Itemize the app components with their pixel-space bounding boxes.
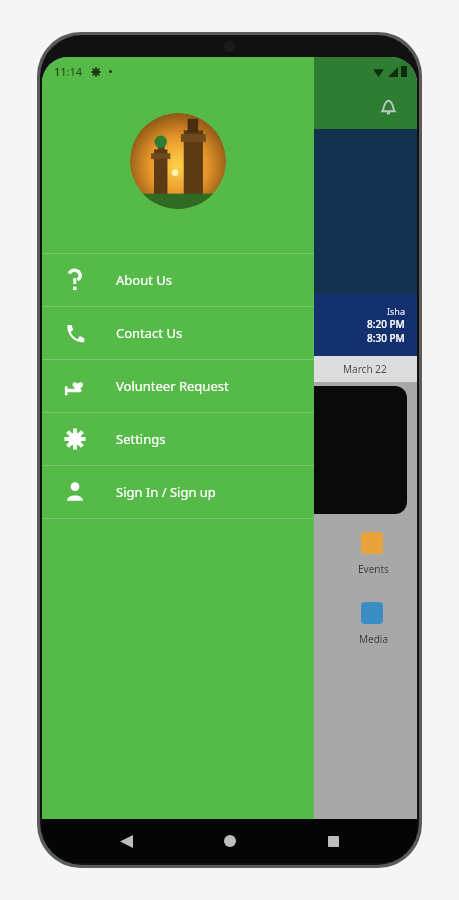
staticText: About Us (116, 271, 173, 289)
button[interactable]: Contact Us (42, 307, 314, 359)
button[interactable]: Volunteer Request (42, 360, 314, 412)
staticText: Contact Us (116, 324, 183, 342)
staticText: Isha (387, 305, 405, 317)
staticText: Volunteer Request (116, 377, 229, 395)
staticText: Sign In / Sign up (116, 483, 216, 501)
staticText: Events (358, 562, 389, 576)
button[interactable]: Settings (42, 413, 314, 465)
staticText: 11:14 (54, 64, 83, 79)
staticText: YOUR (198, 161, 262, 191)
staticText: AND (204, 191, 255, 221)
staticText: Settings (116, 430, 166, 448)
button[interactable]: Home (210, 821, 250, 861)
button[interactable]: Recents (313, 821, 353, 861)
button[interactable]: About Us (42, 254, 314, 306)
button[interactable]: Events (42, 524, 417, 594)
button[interactable]: Sign In / Sign up (42, 466, 314, 518)
button[interactable]: Back (106, 821, 146, 861)
staticText: 8:30 PM (367, 331, 405, 345)
button[interactable]: Media (42, 594, 417, 664)
button[interactable]: Notifications (373, 92, 403, 122)
staticText: Media (359, 632, 389, 646)
staticText: 8:20 PM (367, 317, 405, 331)
staticText: March 22 (343, 362, 387, 376)
